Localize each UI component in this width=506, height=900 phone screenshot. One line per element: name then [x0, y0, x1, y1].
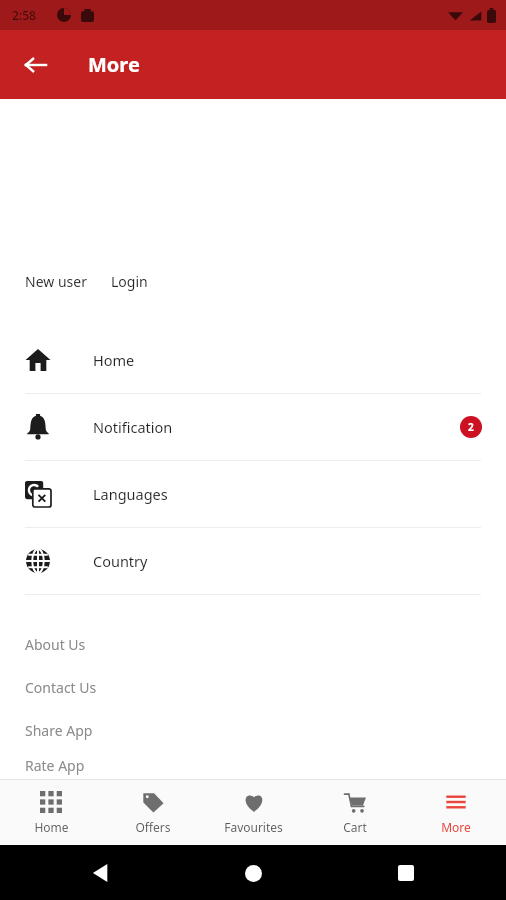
- staticText: Login: [111, 272, 148, 291]
- button[interactable]: Contact Us: [0, 666, 506, 709]
- button[interactable]: Back: [14, 43, 58, 87]
- other: Back: [92, 864, 110, 882]
- staticText: New user: [25, 272, 87, 291]
- button[interactable]: Languages: [0, 461, 506, 527]
- other: Home: [245, 865, 262, 882]
- staticText: Languages: [93, 484, 168, 504]
- button[interactable]: Country: [0, 528, 506, 594]
- button[interactable]: New user: [25, 272, 87, 291]
- staticText: About Us: [25, 635, 86, 654]
- button[interactable]: More: [405, 779, 506, 845]
- staticText: Rate App: [25, 756, 85, 775]
- button[interactable]: Rate App: [0, 752, 506, 779]
- staticText: Offers: [135, 819, 171, 835]
- staticText: Cart: [343, 819, 367, 835]
- button[interactable]: Notification: [0, 394, 506, 460]
- staticText: More: [88, 51, 140, 78]
- other: Recents: [398, 865, 414, 881]
- staticText: Home: [93, 350, 135, 370]
- staticText: Contact Us: [25, 678, 97, 697]
- button[interactable]: About Us: [0, 623, 506, 666]
- staticText: Country: [93, 551, 148, 571]
- button[interactable]: Home: [0, 327, 506, 393]
- button[interactable]: Favourites: [203, 779, 304, 845]
- staticText: Share App: [25, 721, 93, 740]
- staticText: Notification: [93, 417, 173, 437]
- staticText: 2:58: [12, 7, 36, 23]
- button[interactable]: Login: [111, 272, 148, 291]
- button[interactable]: Home: [0, 779, 102, 845]
- staticText: 2: [468, 420, 474, 434]
- staticText: More: [441, 819, 471, 835]
- button[interactable]: Cart: [304, 779, 405, 845]
- button[interactable]: Share App: [0, 709, 506, 752]
- staticText: Home: [34, 819, 69, 835]
- button[interactable]: Offers: [102, 779, 203, 845]
- staticText: Favourites: [224, 819, 283, 835]
